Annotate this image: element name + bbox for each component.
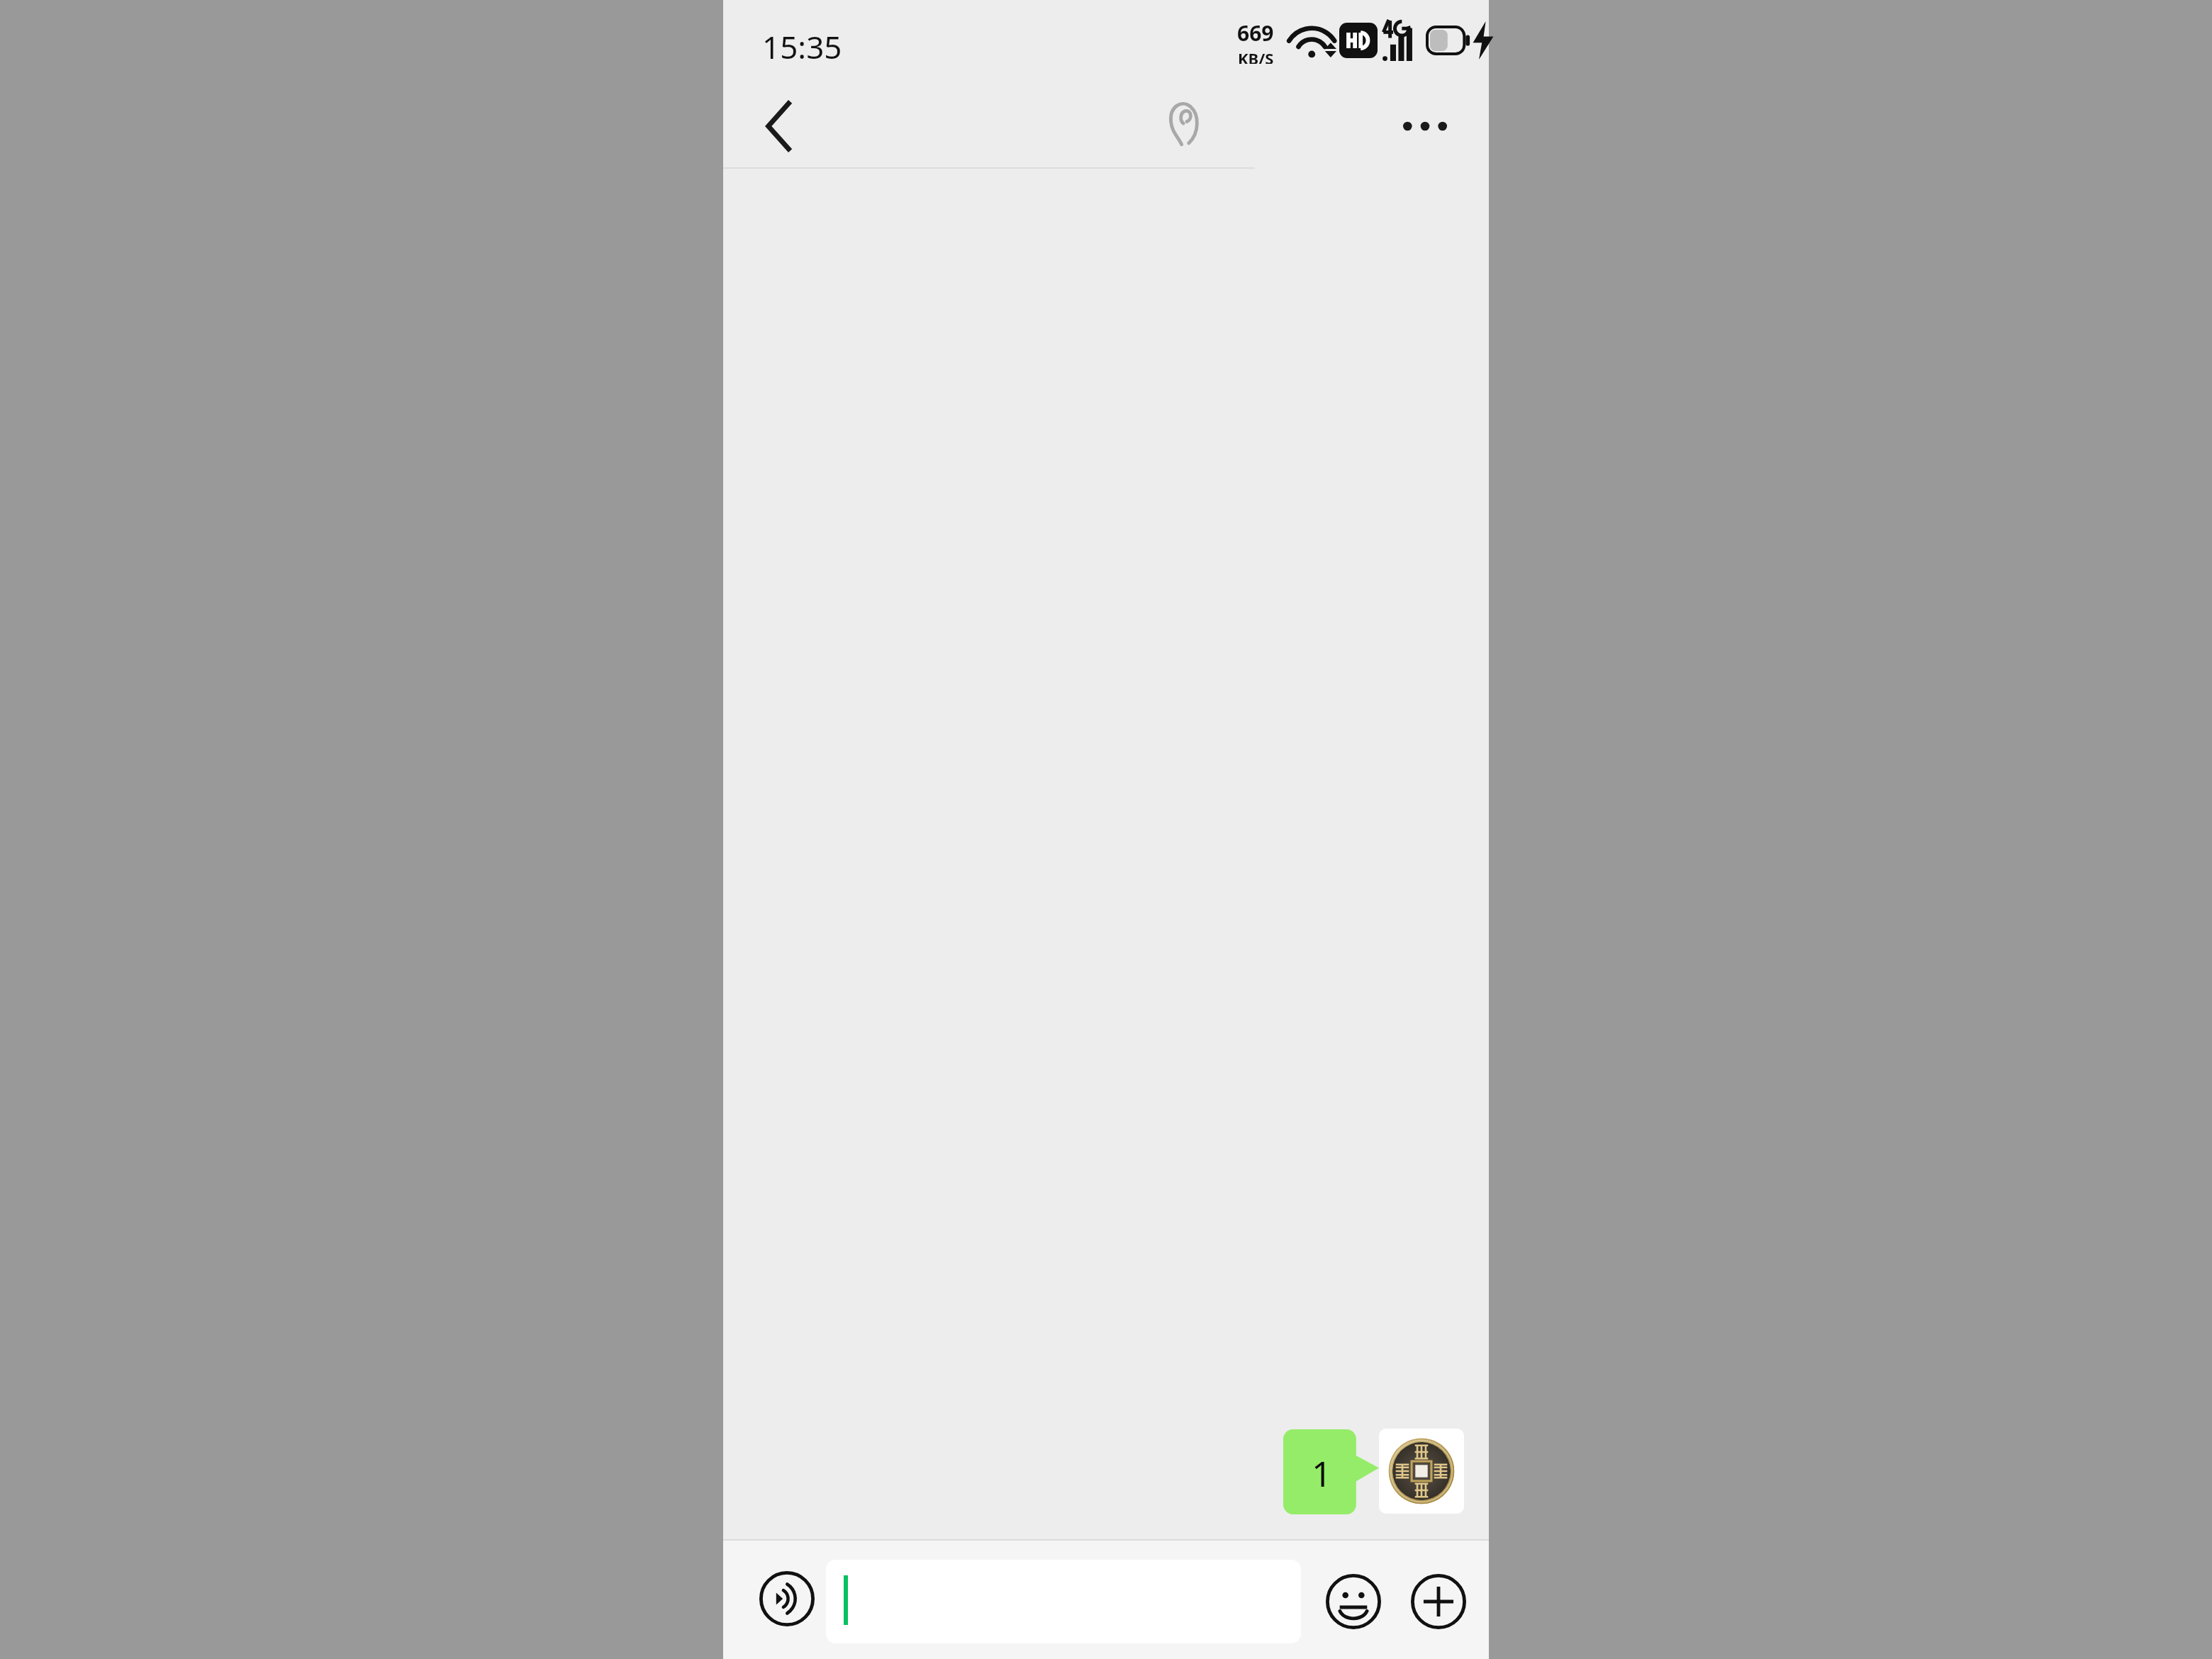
- button[interactable]: Back: [744, 92, 812, 160]
- button[interactable]: Emoji: [1312, 1560, 1395, 1643]
- button[interactable]: More functions: [1397, 1560, 1480, 1643]
- button[interactable]: Earpiece mode: [1150, 89, 1218, 157]
- staticText: 669: [1237, 18, 1274, 48]
- staticText: 15:35: [762, 26, 842, 68]
- staticText: KB/S: [1238, 48, 1274, 64]
- staticText: 1: [1312, 1449, 1332, 1497]
- button[interactable]: More options: [1391, 92, 1459, 160]
- button[interactable]: Contact avatar: [1379, 1429, 1464, 1514]
- button[interactable]: Voice input: [744, 1556, 829, 1641]
- button[interactable]: [826, 1560, 1301, 1643]
